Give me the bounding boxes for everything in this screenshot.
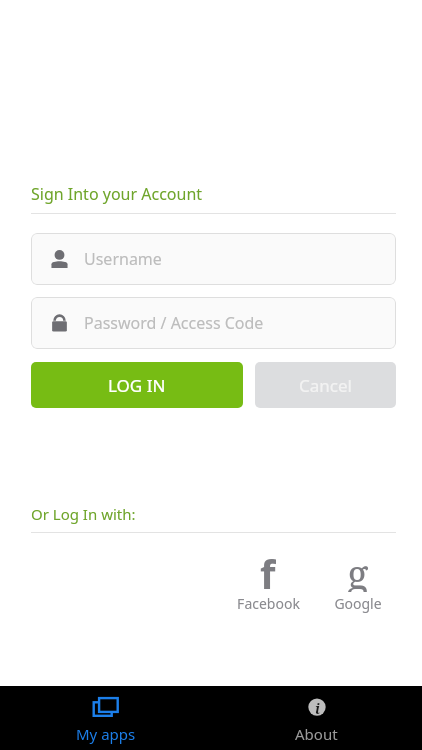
staticText: Cancel (299, 374, 352, 397)
button[interactable]: Username (31, 233, 396, 285)
button[interactable]: My apps (0, 686, 211, 750)
staticText: About (295, 724, 338, 744)
staticText: f (260, 546, 276, 592)
staticText: Or Log In with: (31, 504, 136, 524)
button[interactable]: g (318, 546, 398, 613)
staticText: i (315, 699, 320, 718)
staticText: g (347, 546, 369, 592)
staticText: Username (84, 248, 162, 270)
staticText: Sign Into your Account (31, 183, 203, 205)
staticText: Google (334, 594, 382, 613)
staticText: My apps (76, 724, 136, 744)
button[interactable]: About (211, 686, 422, 750)
staticText: Password / Access Code (84, 312, 264, 334)
staticText: LOG IN (108, 374, 166, 397)
button[interactable]: LOG IN (31, 362, 243, 408)
button[interactable]: Password / Access Code (31, 297, 396, 349)
button[interactable]: Cancel (255, 362, 396, 408)
button[interactable]: f (228, 546, 308, 613)
staticText: Facebook (237, 594, 300, 613)
